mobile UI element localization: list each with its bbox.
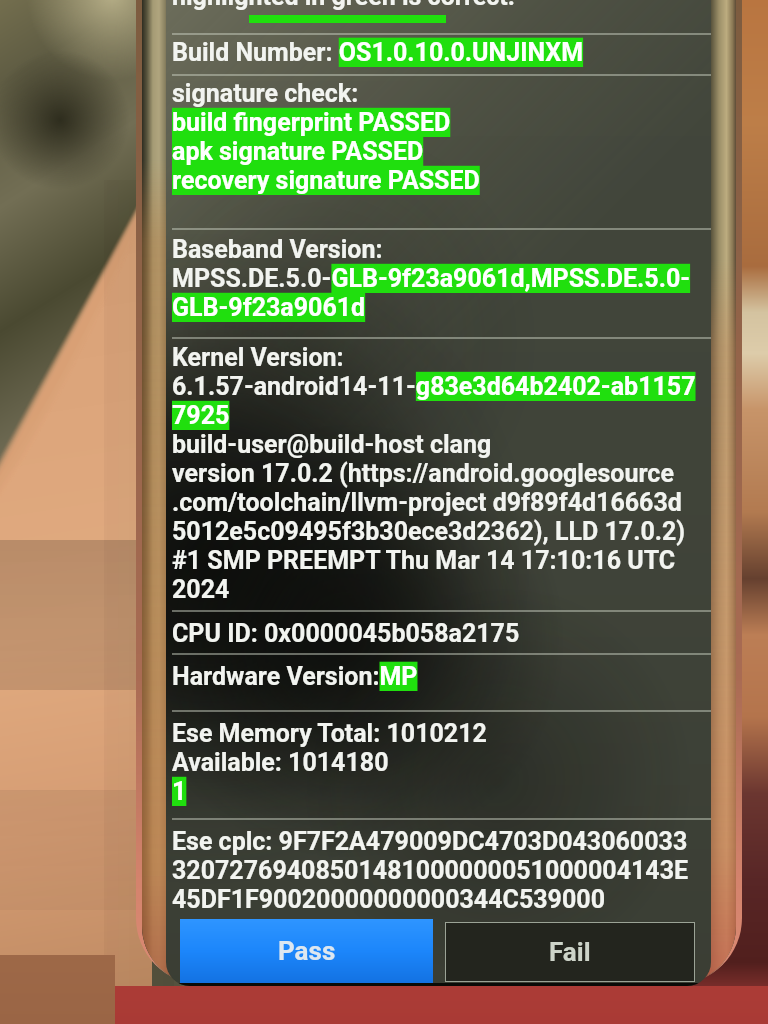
staticText: Baseband Version: MPSS.DE.5.0-GLB-9f23a9… (172, 235, 691, 322)
button[interactable]: Fail (445, 922, 695, 982)
staticText: CPU ID: 0x0000045b058a2175 (172, 619, 520, 648)
staticText: Ese Memory Total: 1010212 Available: 101… (172, 719, 487, 806)
staticText: Build Number: OS1.0.10.0.UNJINXM (172, 38, 584, 67)
staticText: Hardware Version:MP (172, 662, 418, 691)
staticText: Ese cplc: 9F7F2A479009DC4703D043060033 3… (172, 827, 689, 914)
staticText: Pass (278, 936, 336, 966)
staticText: highlighted in green is correct. (172, 0, 516, 11)
staticText: Kernel Version: 6.1.57-android14-11-g83e… (172, 343, 696, 604)
staticText: signature check: build fingerprint PASSE… (172, 79, 480, 195)
button[interactable]: Pass (180, 919, 433, 983)
staticText: Fail (549, 937, 591, 967)
